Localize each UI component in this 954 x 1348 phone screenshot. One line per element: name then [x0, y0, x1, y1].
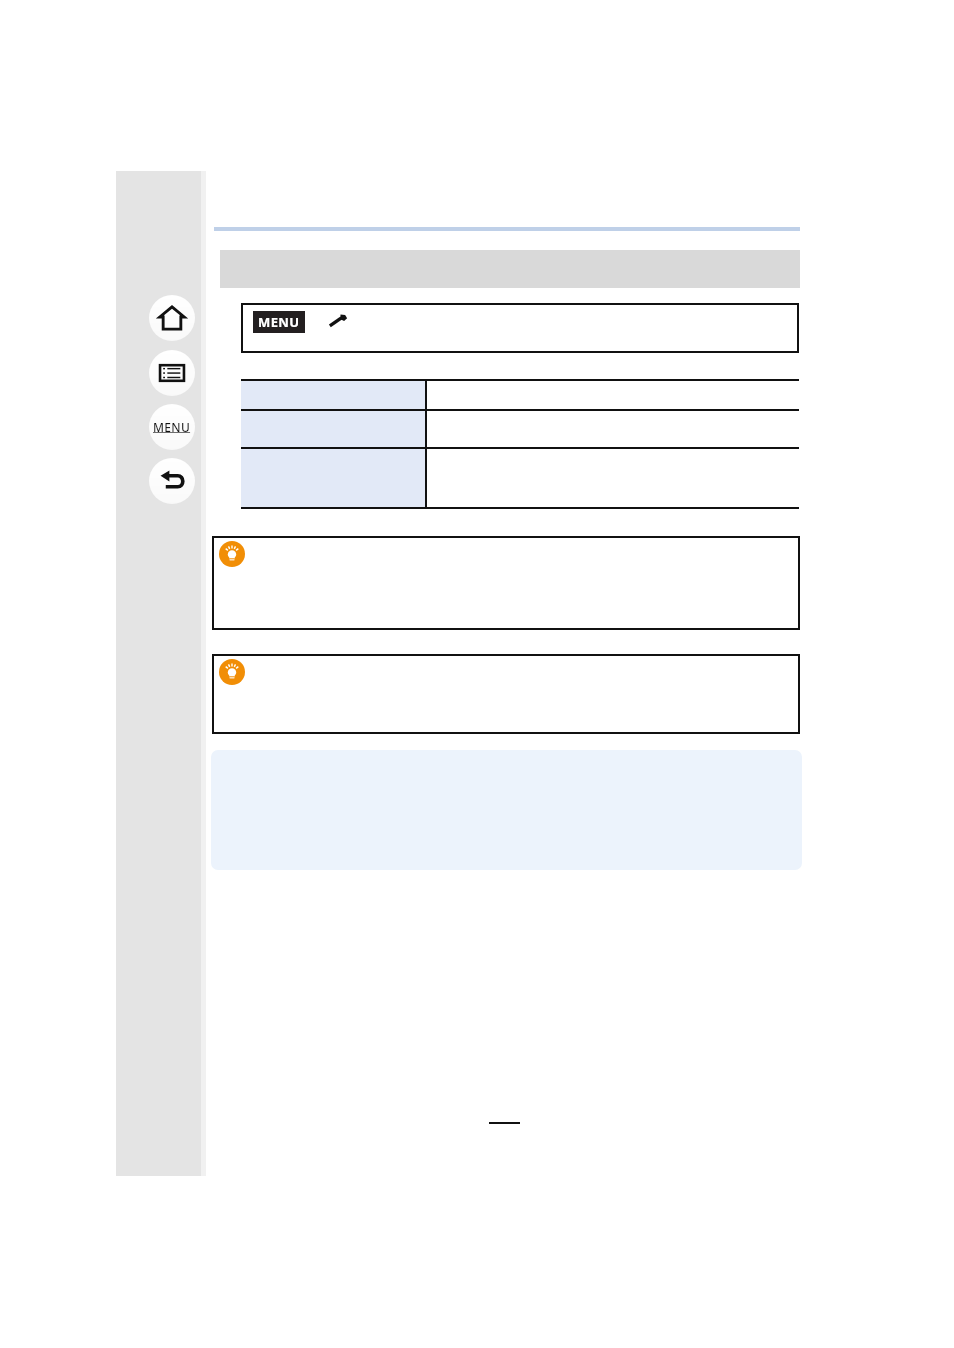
staticText: MENU	[258, 313, 300, 331]
button[interactable]: Menu	[149, 404, 195, 450]
button[interactable]: MENU	[241, 303, 799, 353]
staticText: MENU	[153, 419, 191, 435]
button[interactable]	[212, 654, 800, 734]
button[interactable]: Back	[149, 458, 195, 504]
button[interactable]: Home	[149, 295, 195, 341]
button[interactable]	[212, 536, 800, 630]
button[interactable]: Contents	[149, 350, 195, 396]
